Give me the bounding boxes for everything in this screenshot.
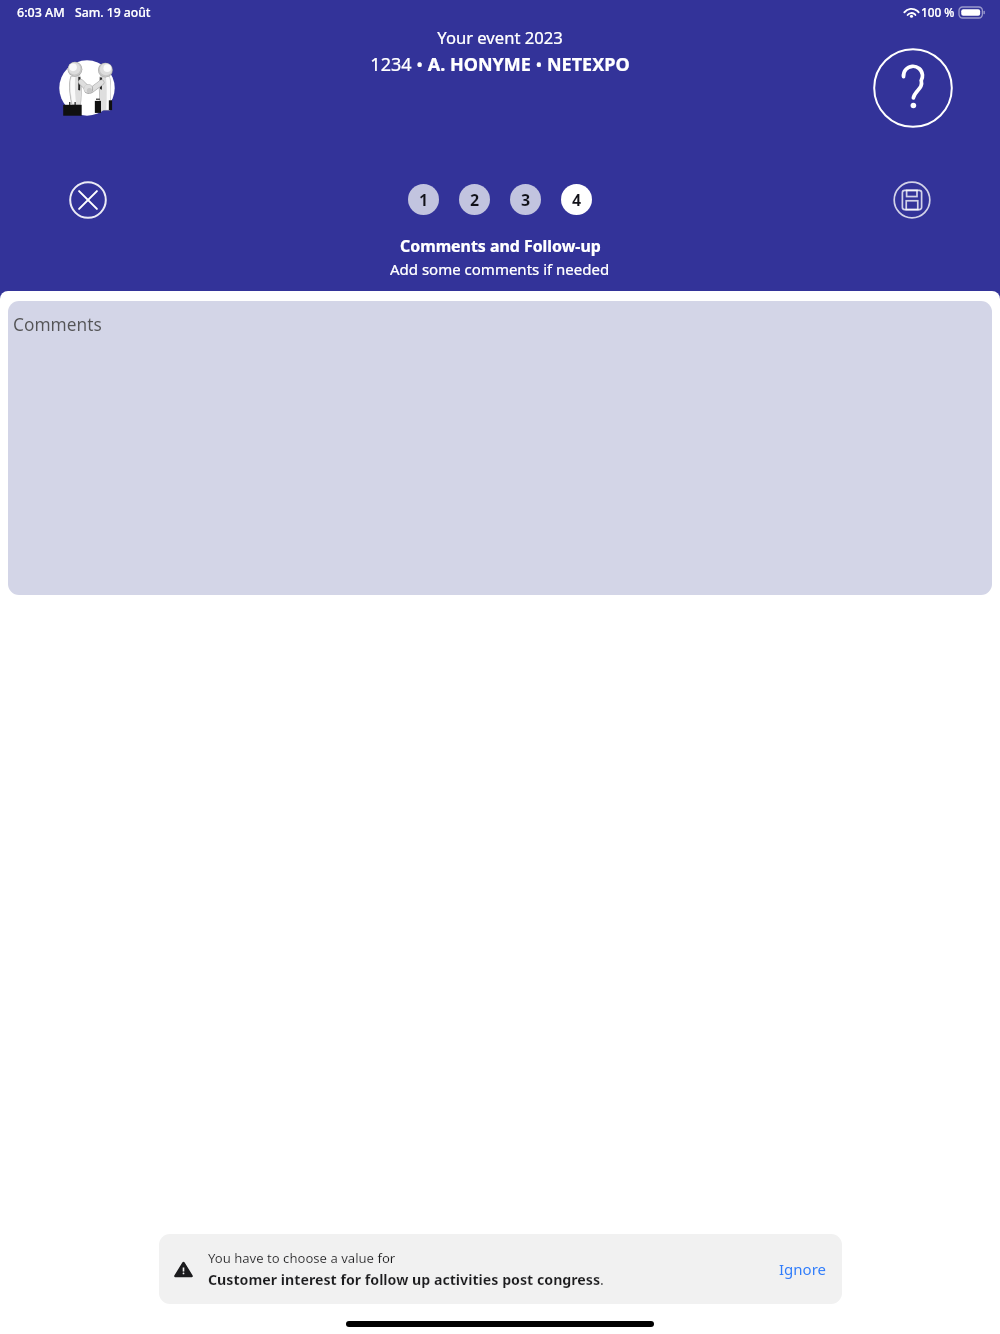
staticText: Sam. 19 août	[75, 4, 151, 21]
staticText: 1234 • A. HONYME • NETEXPO	[370, 52, 630, 77]
button[interactable]: 3	[510, 184, 541, 215]
staticText: Comments	[13, 313, 102, 337]
button[interactable]: Event logo	[59, 60, 115, 116]
button[interactable]: Ignore	[773, 1249, 833, 1289]
staticText: Your event 2023	[437, 26, 563, 49]
staticText: 3	[521, 189, 531, 211]
staticText: 1	[419, 189, 429, 211]
staticText: Add some comments if needed	[390, 259, 610, 279]
button[interactable]: Save	[888, 176, 936, 224]
button[interactable]: Comments	[8, 301, 992, 595]
staticText: Comments and Follow-up	[400, 235, 601, 257]
staticText: 4	[572, 189, 582, 211]
staticText: Ignore	[779, 1259, 827, 1279]
staticText: 2	[470, 189, 480, 211]
staticText: Customer interest for follow up activiti…	[208, 1270, 604, 1289]
button[interactable]: Help	[869, 44, 957, 132]
button[interactable]: 2	[459, 184, 490, 215]
button[interactable]: Close	[64, 176, 112, 224]
button[interactable]: 4	[561, 184, 592, 215]
staticText: 100 %	[921, 4, 955, 20]
staticText: 6:03 AM	[17, 4, 65, 21]
button[interactable]: 1	[408, 184, 439, 215]
button[interactable]: You have to choose a value for	[159, 1234, 842, 1304]
staticText: You have to choose a value for	[208, 1249, 396, 1267]
